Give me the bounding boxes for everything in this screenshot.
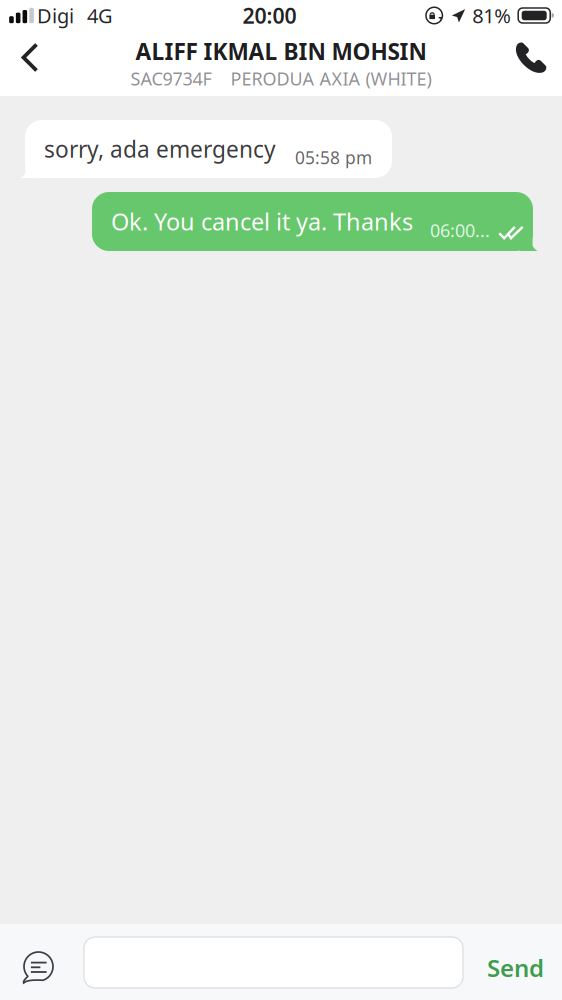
staticText: 06:00... [430, 218, 490, 242]
button[interactable]: Quick replies [0, 924, 84, 1000]
staticText: ALIFF IKMAL BIN MOHSIN [135, 36, 426, 66]
staticText: 20:00 [243, 1, 297, 30]
staticText: PERODUA AXIA (WHITE) [230, 66, 431, 91]
staticText: Digi [37, 2, 74, 29]
staticText: Ok. You cancel it ya. Thanks [111, 205, 413, 237]
button[interactable]: Send [463, 924, 562, 1000]
staticText: 4G [87, 2, 113, 29]
staticText: 81% [472, 2, 511, 29]
staticText: SAC9734F [130, 66, 211, 91]
staticText: Send [487, 951, 544, 984]
staticText: sorry, ada emergency [44, 134, 276, 164]
staticText: 05:58 pm [295, 146, 372, 169]
button[interactable]: Call [500, 31, 562, 84]
button[interactable]: Back [0, 32, 60, 82]
